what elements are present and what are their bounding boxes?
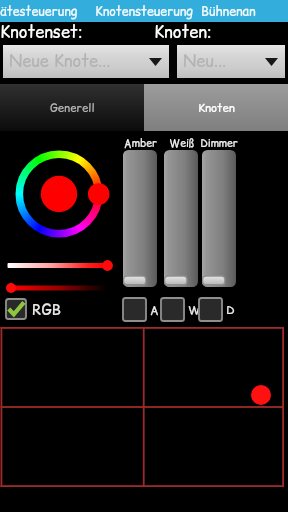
staticText: Knoten — [198, 100, 235, 116]
staticText: Neue Knote... — [9, 50, 111, 73]
staticText: Dimmer — [200, 136, 238, 151]
button[interactable]: Generell — [0, 84, 144, 131]
staticText: Weiß — [169, 136, 194, 151]
staticText: RGB — [32, 299, 62, 320]
staticText: Knotensteuerung — [95, 3, 193, 20]
staticText: W — [188, 301, 201, 318]
button[interactable]: Knoten — [144, 84, 288, 131]
button[interactable]: RGB — [5, 298, 62, 320]
button[interactable]: D — [198, 297, 235, 322]
button[interactable]: Dimmer — [202, 150, 236, 287]
button[interactable]: Gerätesteuerung — [0, 0, 86, 22]
button[interactable]: Amber — [123, 150, 157, 287]
staticText: Knotenset: — [0, 21, 83, 44]
staticText: D — [226, 301, 235, 318]
staticText: Bühnenansicht — [201, 3, 259, 20]
staticText: Amber — [124, 136, 157, 151]
button[interactable]: W — [160, 297, 201, 322]
button[interactable]: Neu... — [177, 45, 285, 78]
staticText: Neu... — [183, 50, 227, 73]
button[interactable]: Stage view — [0, 327, 288, 512]
button[interactable]: Bühnenansicht — [201, 0, 259, 22]
button[interactable]: Neue Knote... — [3, 45, 169, 78]
button[interactable]: Weiß — [164, 150, 198, 287]
button[interactable]: Knotensteuerung — [86, 0, 201, 22]
button[interactable]: A — [122, 297, 159, 322]
staticText: Generell — [50, 100, 95, 116]
staticText: Knoten: — [154, 21, 212, 44]
staticText: Gerätesteuerung — [0, 3, 78, 20]
staticText: A — [150, 301, 159, 318]
